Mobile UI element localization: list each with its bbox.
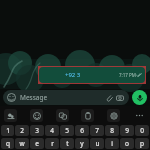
- button[interactable]: q: [1, 138, 14, 149]
- staticText: q: [6, 139, 10, 148]
- button[interactable]: 0: [135, 125, 149, 136]
- button[interactable]: Camera: [114, 92, 125, 103]
- staticText: 6: [80, 126, 84, 135]
- button[interactable]: 6: [75, 125, 89, 136]
- button[interactable]: Clipboard: [81, 109, 94, 122]
- button[interactable]: y: [75, 138, 89, 149]
- button[interactable]: +92 3: [39, 67, 145, 83]
- staticText: i: [111, 139, 113, 148]
- button[interactable]: Attach: [103, 92, 114, 103]
- button[interactable]: i: [105, 138, 119, 149]
- button[interactable]: 2: [15, 125, 29, 136]
- staticText: y: [80, 139, 84, 148]
- staticText: e: [35, 139, 39, 148]
- button[interactable]: Settings: [107, 109, 120, 122]
- staticText: 9: [125, 126, 129, 135]
- button[interactable]: o: [120, 138, 134, 149]
- staticText: p: [140, 139, 144, 148]
- button[interactable]: u: [90, 138, 104, 149]
- staticText: w: [19, 139, 25, 148]
- button[interactable]: w: [15, 138, 29, 149]
- staticText: 8: [110, 126, 114, 135]
- button[interactable]: 9: [120, 125, 134, 136]
- staticText: Message: [20, 93, 103, 102]
- staticText: 7:17 PM: [119, 72, 136, 78]
- button[interactable]: 1: [1, 125, 14, 136]
- button[interactable]: Voice message: [132, 90, 147, 105]
- button[interactable]: 7: [90, 125, 104, 136]
- button[interactable]: Message: [3, 90, 129, 105]
- button[interactable]: Translate: [56, 109, 69, 122]
- staticText: 1: [6, 126, 10, 135]
- button[interactable]: 8: [105, 125, 119, 136]
- staticText: 3: [35, 126, 39, 135]
- button[interactable]: 5: [60, 125, 74, 136]
- staticText: t: [66, 139, 69, 148]
- button[interactable]: r: [45, 138, 59, 149]
- staticText: o: [125, 139, 129, 148]
- button[interactable]: e: [30, 138, 44, 149]
- button[interactable]: More: [133, 109, 146, 122]
- staticText: 2: [20, 126, 24, 135]
- staticText: 5: [65, 126, 69, 135]
- button[interactable]: t: [60, 138, 74, 149]
- staticText: r: [51, 139, 54, 148]
- staticText: 0: [140, 126, 144, 135]
- button[interactable]: p: [135, 138, 149, 149]
- staticText: 7: [95, 126, 99, 135]
- staticText: u: [95, 139, 100, 148]
- button[interactable]: Stickers: [4, 109, 17, 122]
- button[interactable]: 4: [45, 125, 59, 136]
- staticText: +92 3: [65, 71, 81, 79]
- button[interactable]: 3: [30, 125, 44, 136]
- staticText: 4: [50, 126, 54, 135]
- button[interactable]: Emoji: [30, 109, 43, 122]
